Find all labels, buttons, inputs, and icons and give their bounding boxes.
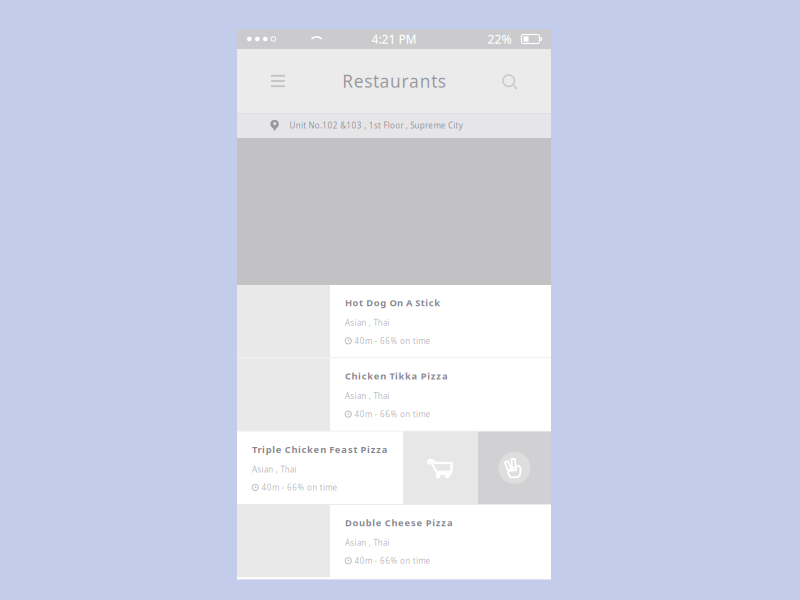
staticText: 40m - 66% on time [354,555,430,566]
button[interactable]: Favourite [478,432,551,504]
staticText: 40m - 66% on time [354,335,430,346]
button[interactable]: Menu [256,49,300,113]
button[interactable]: Triple Chicken Feast Pizza [252,432,402,494]
button[interactable]: Hot Dog On A Stick [237,285,551,357]
button[interactable]: Chicken Tikka Pizza [237,358,551,431]
staticText: Asian , Thai [345,391,389,401]
button[interactable]: Add to cart [403,432,478,504]
staticText: Asian , Thai [252,464,296,475]
staticText: Unit No.102 &103 , 1st Floor , Supreme C… [289,120,463,131]
staticText: Restaurants [342,69,446,92]
staticText: 40m - 66% on time [261,482,337,493]
staticText: 4:21 PM [371,31,416,47]
staticText: Hot Dog On A Stick [345,296,440,309]
staticText: Asian , Thai [345,537,389,548]
staticText: 40m - 66% on time [354,409,430,419]
staticText: 22% [487,31,511,47]
staticText: Triple Chicken Feast Pizza [252,443,388,455]
staticText: Double Cheese Pizza [345,516,453,529]
button[interactable]: Double Cheese Pizza [237,505,551,577]
staticText: Asian , Thai [345,317,389,328]
button[interactable]: Search [488,49,532,113]
staticText: Chicken Tikka Pizza [345,370,448,382]
